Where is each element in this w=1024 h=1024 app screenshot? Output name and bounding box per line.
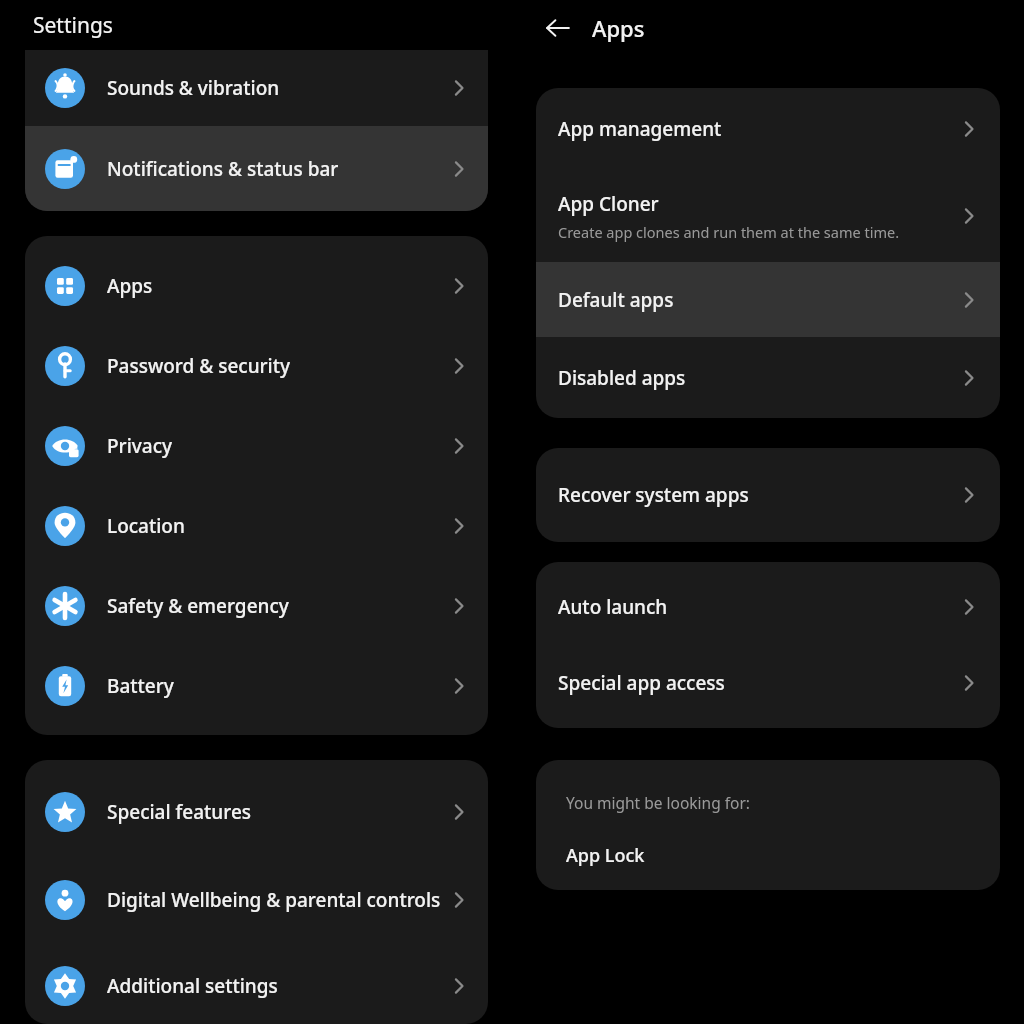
button[interactable]: App Lock [536, 835, 1000, 875]
button[interactable]: App management [536, 88, 1000, 170]
button[interactable]: Additional settings [25, 948, 488, 1024]
button[interactable]: Safety & emergency [25, 566, 488, 646]
button[interactable]: Special features [25, 772, 488, 852]
button[interactable]: Disabled apps [536, 337, 1000, 418]
staticText: Notifications & status bar [107, 156, 339, 182]
button[interactable]: Privacy [25, 406, 488, 486]
staticText: Location [107, 513, 185, 539]
staticText: Digital Wellbeing & parental controls [107, 887, 441, 913]
staticText: Password & security [107, 353, 291, 379]
staticText: Create app clones and run them at the sa… [558, 222, 900, 242]
staticText: Battery [107, 673, 174, 699]
staticText: Sounds & vibration [107, 75, 280, 101]
button[interactable]: Battery [25, 646, 488, 726]
button[interactable]: Location [25, 486, 488, 566]
button[interactable]: Default apps [536, 262, 1000, 337]
button[interactable]: Back [534, 4, 582, 52]
staticText: Apps [592, 13, 645, 43]
button[interactable]: Apps [25, 246, 488, 326]
button[interactable]: Sounds & vibration [25, 50, 488, 126]
button[interactable]: Auto launch [536, 569, 1000, 645]
staticText: App Lock [566, 843, 645, 868]
staticText: App management [558, 116, 722, 142]
button[interactable]: Digital Wellbeing & parental controls [25, 852, 488, 948]
button[interactable]: Recover system apps [536, 455, 1000, 535]
staticText: App Cloner [558, 191, 659, 217]
staticText: Disabled apps [558, 365, 686, 391]
staticText: You might be looking for: [566, 792, 750, 813]
button[interactable]: App Cloner [536, 170, 1000, 262]
staticText: Special features [107, 799, 252, 825]
staticText: Privacy [107, 433, 172, 459]
button[interactable]: Notifications & status bar [25, 126, 488, 211]
staticText: Recover system apps [558, 482, 749, 508]
staticText: Settings [33, 11, 113, 40]
staticText: Additional settings [107, 973, 278, 999]
staticText: Safety & emergency [107, 593, 289, 619]
staticText: Special app access [558, 670, 725, 696]
staticText: Apps [107, 273, 153, 299]
staticText: Auto launch [558, 594, 668, 620]
button[interactable]: Password & security [25, 326, 488, 406]
staticText: Default apps [558, 287, 674, 313]
button[interactable]: Special app access [536, 645, 1000, 721]
